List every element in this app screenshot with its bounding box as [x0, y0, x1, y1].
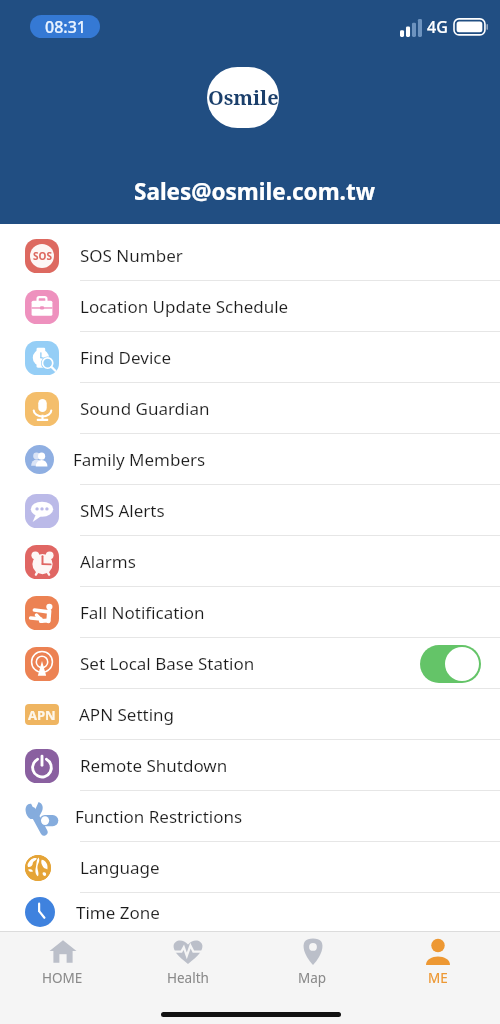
- button[interactable]: Time Zone: [0, 893, 500, 931]
- staticText: 4G: [427, 16, 448, 38]
- staticText: Find Device: [80, 346, 172, 369]
- staticText: Language: [80, 856, 160, 879]
- button[interactable]: Fall Notification: [0, 587, 500, 638]
- staticText: ME: [428, 969, 448, 987]
- staticText: 08:31: [45, 16, 86, 38]
- staticText: APN Setting: [79, 703, 175, 726]
- staticText: Osmile: [208, 84, 279, 111]
- staticText: Map: [298, 969, 327, 987]
- button[interactable]: Location Update Schedule: [0, 281, 500, 332]
- button[interactable]: Language: [0, 842, 500, 893]
- button[interactable]: SMS Alerts: [0, 485, 500, 536]
- button[interactable]: HOME: [0, 932, 125, 992]
- staticText: Function Restrictions: [75, 805, 243, 828]
- button[interactable]: Family Members: [0, 434, 500, 485]
- button[interactable]: Find Device: [0, 332, 500, 383]
- button[interactable]: Sound Guardian: [0, 383, 500, 434]
- staticText: Time Zone: [76, 901, 160, 924]
- staticText: SOS Number: [80, 244, 183, 267]
- staticText: Sales@osmile.com.tw: [134, 176, 375, 207]
- staticText: Set Local Base Station: [80, 652, 255, 675]
- button[interactable]: Health: [125, 932, 250, 992]
- staticText: Fall Notification: [80, 601, 205, 624]
- staticText: Location Update Schedule: [80, 295, 289, 318]
- staticText: HOME: [42, 969, 83, 987]
- staticText: Alarms: [80, 550, 136, 573]
- button[interactable]: Set Local Base Station: [0, 638, 500, 689]
- staticText: Health: [167, 969, 209, 987]
- button[interactable]: Function Restrictions: [0, 791, 500, 842]
- button[interactable]: Remote Shutdown: [0, 740, 500, 791]
- staticText: APN: [28, 706, 56, 724]
- button[interactable]: Alarms: [0, 536, 500, 587]
- staticText: Sound Guardian: [80, 397, 210, 420]
- button[interactable]: Toggle Set Local Base Station: [420, 645, 481, 683]
- button[interactable]: APN: [0, 689, 500, 740]
- staticText: SOS: [33, 249, 52, 263]
- staticText: Remote Shutdown: [80, 754, 228, 777]
- staticText: Family Members: [73, 448, 206, 471]
- button[interactable]: Map: [250, 932, 375, 992]
- staticText: SMS Alerts: [80, 499, 165, 522]
- button[interactable]: ME: [375, 932, 500, 992]
- button[interactable]: SOS: [0, 230, 500, 281]
